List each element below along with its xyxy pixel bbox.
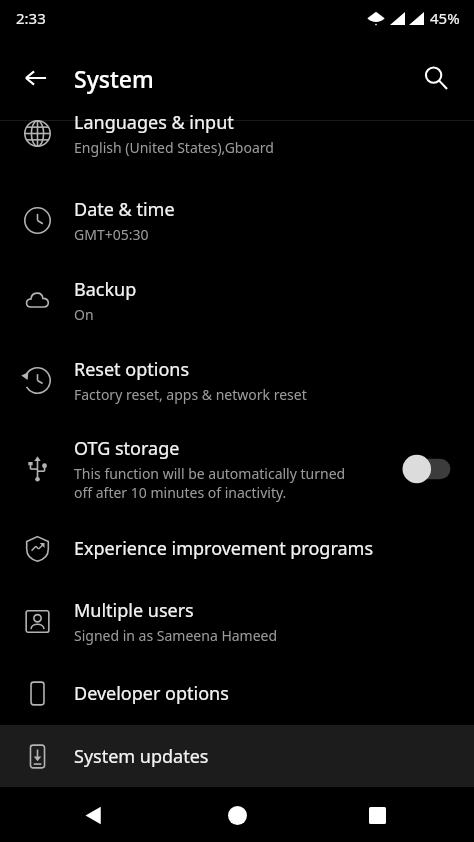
staticText: Reset options bbox=[74, 357, 190, 382]
button[interactable]: Back bbox=[14, 56, 58, 100]
staticText: Signed in as Sameena Hameed bbox=[74, 626, 278, 645]
staticText: Date & time bbox=[74, 197, 175, 222]
staticText: 45% bbox=[430, 8, 460, 28]
button[interactable]: Reset options bbox=[0, 340, 474, 420]
staticText: This function will be automatically turn… bbox=[74, 464, 346, 502]
staticText: Factory reset, apps & network reset bbox=[74, 385, 307, 404]
button[interactable]: Recents bbox=[355, 793, 399, 837]
button[interactable]: Back bbox=[71, 793, 115, 837]
staticText: Experience improvement programs bbox=[74, 536, 374, 561]
button[interactable]: Experience improvement programs bbox=[0, 517, 474, 580]
staticText: Languages & input bbox=[74, 110, 234, 135]
button[interactable]: System updates bbox=[0, 725, 474, 787]
button[interactable]: Backup bbox=[0, 260, 474, 340]
staticText: English (United States),Gboard bbox=[74, 138, 274, 157]
button[interactable]: Languages & input bbox=[0, 104, 474, 163]
button[interactable]: Developer options bbox=[0, 662, 474, 725]
staticText: Backup bbox=[74, 277, 137, 302]
staticText: Multiple users bbox=[74, 598, 194, 623]
staticText: GMT+05:30 bbox=[74, 225, 149, 244]
button[interactable]: Search bbox=[412, 54, 460, 102]
staticText: Developer options bbox=[74, 681, 229, 706]
button[interactable]: OTG storage bbox=[0, 420, 474, 517]
staticText: OTG storage bbox=[74, 436, 180, 461]
staticText: On bbox=[74, 305, 94, 324]
button[interactable]: Date & time bbox=[0, 180, 474, 260]
staticText: 2:33 bbox=[16, 8, 46, 28]
button[interactable]: Multiple users bbox=[0, 580, 474, 662]
button[interactable]: OTG storage toggle bbox=[400, 452, 456, 486]
staticText: System bbox=[74, 63, 154, 94]
button[interactable]: Home bbox=[215, 793, 259, 837]
staticText: System updates bbox=[74, 744, 209, 769]
